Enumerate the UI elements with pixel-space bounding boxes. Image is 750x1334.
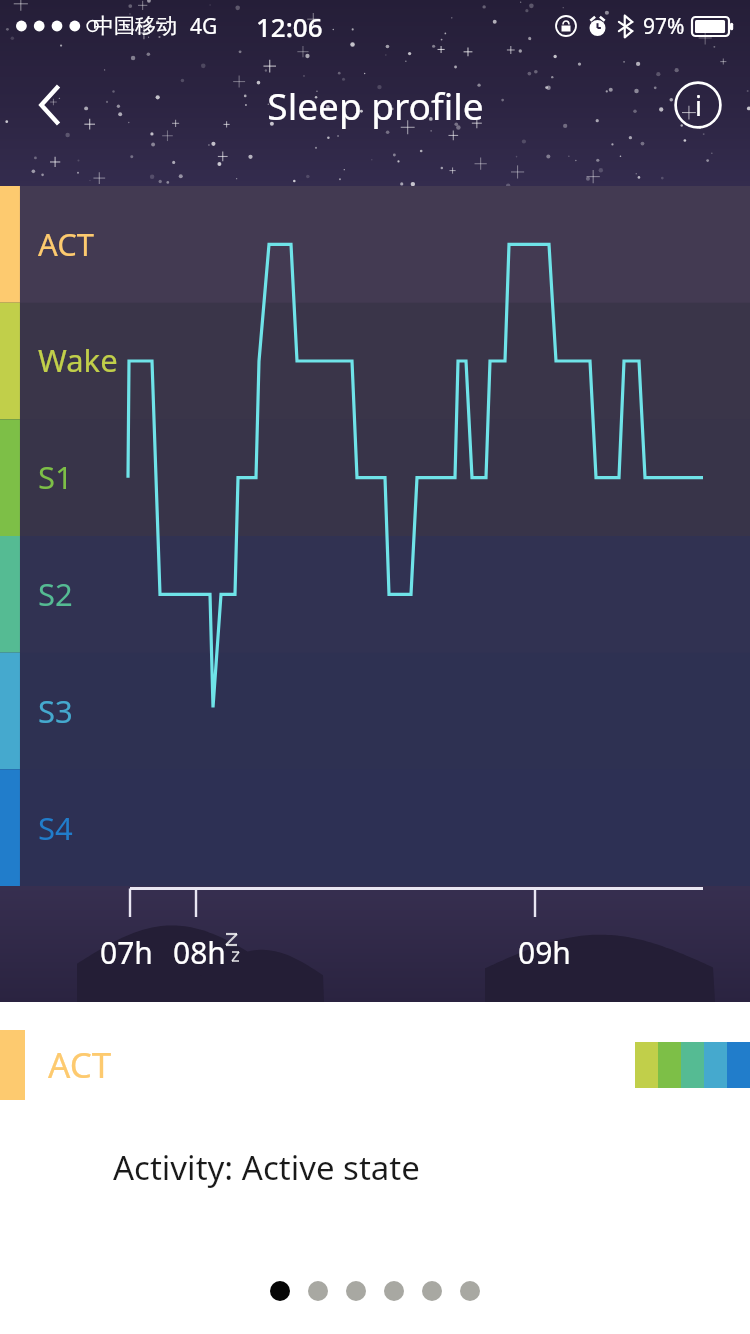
staticText: i [695,87,702,124]
staticText: Wake [38,339,118,381]
button[interactable]: Page 6 [460,1281,480,1301]
staticText: 中国移动 [93,13,177,39]
staticText: ACT [48,1041,112,1089]
button[interactable]: ACT [0,1030,750,1100]
button[interactable]: Back [16,71,84,139]
staticText: 07h [100,932,153,973]
staticText: 12:06 [256,9,323,44]
button[interactable]: Page 2 [308,1281,328,1301]
staticText: S1 [38,456,73,498]
staticText: Sleep profile [267,80,484,130]
button[interactable]: Info [668,75,728,135]
button[interactable]: Page 4 [384,1281,404,1301]
staticText: 08h [173,932,226,973]
staticText: Activity: Active state [113,1145,420,1190]
staticText: 09h [518,932,571,973]
staticText: ACT [38,223,95,265]
staticText: S4 [38,807,73,849]
staticText: S3 [38,690,73,732]
button[interactable]: Page 5 [422,1281,442,1301]
staticText: 4G [190,12,218,41]
staticText: 97% [643,12,685,41]
button[interactable]: Page 1 [270,1281,290,1301]
button[interactable]: Page 3 [346,1281,366,1301]
staticText: S2 [38,573,73,615]
